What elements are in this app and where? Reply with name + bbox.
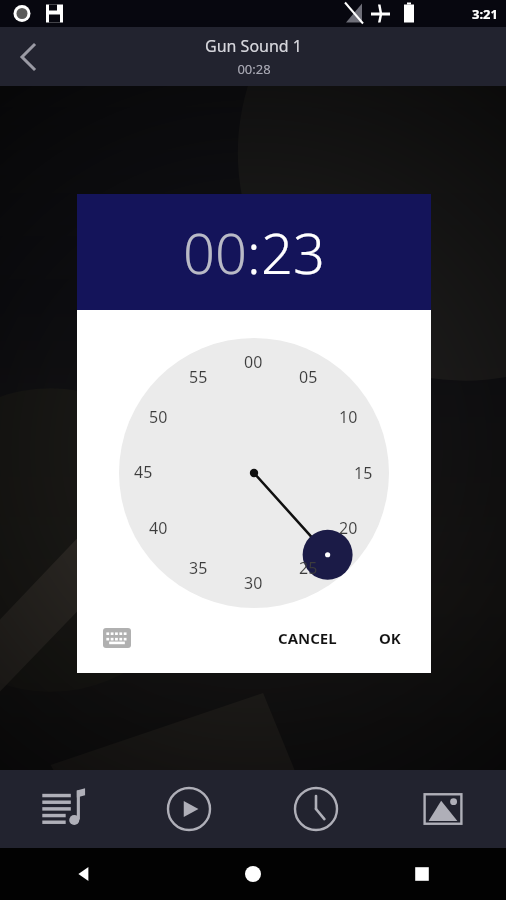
staticText: 00:28 xyxy=(237,60,271,78)
staticText: 35 xyxy=(189,557,208,579)
staticText: 40 xyxy=(149,517,168,539)
button[interactable]: 00 xyxy=(119,338,389,608)
staticText: 00 xyxy=(183,214,247,290)
staticText: : xyxy=(247,214,261,290)
button[interactable]: Wallpaper xyxy=(379,770,506,848)
staticText: Gun Sound 1 xyxy=(205,35,302,57)
staticText: 20 xyxy=(339,517,358,539)
button[interactable]: Play xyxy=(126,770,252,848)
button[interactable]: 23 xyxy=(261,214,325,290)
staticText: 3:21 xyxy=(472,5,498,23)
staticText: 05 xyxy=(299,366,318,388)
button[interactable]: 00 xyxy=(183,214,247,290)
staticText: 25 xyxy=(299,557,318,579)
button[interactable]: CANCEL xyxy=(266,620,349,656)
button[interactable]: OK xyxy=(367,620,413,656)
staticText: 15 xyxy=(354,462,373,484)
staticText: 00 xyxy=(244,351,263,373)
staticText: 10 xyxy=(339,406,358,428)
button[interactable]: Playlist xyxy=(0,770,126,848)
staticText: 50 xyxy=(149,406,168,428)
staticText: CANCEL xyxy=(278,628,337,648)
button[interactable]: Timer xyxy=(252,770,379,848)
button[interactable]: Home xyxy=(168,848,337,900)
staticText: 45 xyxy=(134,461,153,483)
staticText: 30 xyxy=(244,572,263,594)
button[interactable]: Back xyxy=(0,848,168,900)
staticText: 55 xyxy=(189,366,208,388)
button[interactable]: Back xyxy=(0,29,56,85)
staticText: OK xyxy=(379,628,401,648)
button[interactable]: Switch to keyboard input xyxy=(99,620,135,656)
staticText: 23 xyxy=(261,214,325,290)
button[interactable]: Recent apps xyxy=(337,848,506,900)
